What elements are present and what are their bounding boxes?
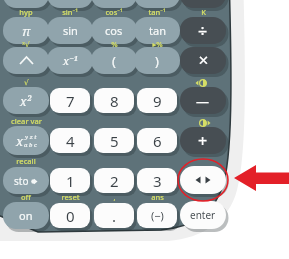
- button[interactable]: 2: [94, 168, 134, 193]
- staticText: x²: [20, 93, 32, 109]
- staticText: ˣ√: [22, 39, 30, 49]
- staticText: a b c: [24, 141, 37, 149]
- staticText: hyp: [19, 7, 33, 17]
- staticText: ▸%: [152, 39, 163, 49]
- staticText: cos: [105, 23, 123, 38]
- staticText: ans: [151, 192, 164, 202]
- button[interactable]: tan: [134, 17, 180, 44]
- button[interactable]: [47, 0, 93, 8]
- button[interactable]: x²: [3, 87, 49, 114]
- staticText: cos⁻¹: [105, 7, 123, 17]
- staticText: 3: [153, 171, 162, 191]
- staticText: (−): [151, 208, 164, 223]
- button[interactable]: .: [94, 203, 134, 228]
- staticText: enter: [190, 208, 216, 222]
- button[interactable]: —: [180, 87, 226, 114]
- staticText: +: [198, 130, 208, 152]
- staticText: ÷: [198, 20, 208, 42]
- staticText: 4: [66, 131, 75, 151]
- button[interactable]: 6: [137, 128, 177, 153]
- staticText: 6: [153, 131, 162, 151]
- staticText: sin⁻¹: [62, 7, 78, 17]
- staticText: (: [112, 52, 116, 70]
- staticText: recall: [16, 156, 36, 166]
- staticText: √: [24, 78, 29, 87]
- staticText: x⁻¹: [63, 53, 78, 68]
- button[interactable]: 3: [137, 168, 177, 193]
- staticText: ): [155, 52, 159, 70]
- button[interactable]: 5: [94, 128, 134, 153]
- staticText: clear var: [11, 116, 42, 126]
- staticText: —: [196, 92, 210, 110]
- button[interactable]: ✕: [180, 47, 226, 74]
- staticText: x: [16, 132, 24, 150]
- staticText: sin: [63, 23, 78, 38]
- button[interactable]: ): [134, 47, 180, 74]
- staticText: 1: [66, 171, 75, 191]
- staticText: .: [112, 206, 117, 226]
- button[interactable]: π: [3, 17, 49, 44]
- staticText: 8: [110, 91, 119, 111]
- staticText: tan: [149, 23, 166, 38]
- button[interactable]: (: [91, 47, 137, 74]
- staticText: sto: [14, 174, 29, 188]
- button[interactable]: 1: [50, 168, 90, 193]
- button[interactable]: Power: [3, 47, 49, 74]
- staticText: K: [201, 7, 206, 17]
- button[interactable]: 0: [50, 203, 90, 228]
- button[interactable]: 8: [94, 88, 134, 113]
- button[interactable]: enter: [180, 201, 226, 229]
- button[interactable]: cos: [91, 17, 137, 44]
- staticText: y z t: [25, 133, 37, 141]
- button[interactable]: 4: [50, 128, 90, 153]
- button[interactable]: (−): [137, 203, 177, 228]
- staticText: on: [19, 208, 33, 223]
- button[interactable]: +: [180, 127, 226, 154]
- button[interactable]: [134, 0, 180, 8]
- button[interactable]: Store: [3, 167, 49, 194]
- button[interactable]: 9: [137, 88, 177, 113]
- button[interactable]: x⁻¹: [47, 47, 93, 74]
- staticText: reset: [61, 192, 80, 202]
- button[interactable]: 7: [50, 88, 90, 113]
- button[interactable]: [91, 0, 137, 8]
- button[interactable]: [180, 0, 226, 8]
- button[interactable]: on: [3, 202, 49, 229]
- staticText: 0: [66, 206, 75, 226]
- staticText: 2: [110, 171, 119, 191]
- staticText: ✕: [198, 53, 209, 68]
- button[interactable]: ÷: [180, 17, 226, 44]
- button[interactable]: Variables: [3, 126, 49, 155]
- staticText: ,: [113, 192, 116, 202]
- staticText: off: [21, 192, 31, 202]
- button[interactable]: sin: [47, 17, 93, 44]
- staticText: 7: [66, 91, 75, 111]
- staticText: %: [111, 39, 118, 49]
- staticText: π: [22, 22, 31, 40]
- staticText: tan⁻¹: [148, 7, 166, 17]
- staticText: 9: [153, 91, 162, 111]
- button[interactable]: Navigation arrows: [180, 166, 226, 194]
- staticText: 5: [110, 131, 119, 151]
- button[interactable]: [3, 0, 49, 8]
